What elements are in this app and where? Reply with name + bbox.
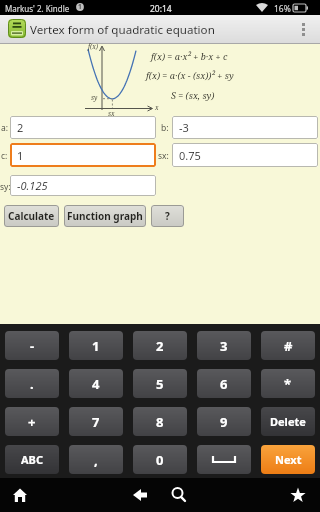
staticText: b:	[161, 122, 169, 134]
button[interactable]	[8, 483, 32, 507]
button[interactable]	[197, 445, 251, 474]
button[interactable]: Function graph	[64, 205, 146, 227]
button[interactable]	[292, 15, 320, 44]
staticText: sx	[108, 109, 115, 118]
button[interactable]: 7	[69, 407, 123, 436]
button[interactable]: 1	[69, 331, 123, 360]
button[interactable]: Next	[261, 445, 315, 474]
staticText: sx:	[158, 150, 169, 162]
staticText: 0.75	[179, 148, 201, 163]
button[interactable]: 5	[133, 369, 187, 398]
button[interactable]: ?	[151, 205, 184, 227]
staticText: -0.125	[17, 178, 48, 193]
staticText: Calculate	[8, 209, 55, 223]
button[interactable]: 8	[133, 407, 187, 436]
button[interactable]: 3	[197, 331, 251, 360]
button[interactable]: 4	[69, 369, 123, 398]
button[interactable]: ,	[69, 445, 123, 474]
staticText: #	[284, 337, 293, 355]
staticText: ABC	[21, 452, 43, 467]
button[interactable]: ABC	[5, 445, 59, 474]
button[interactable]: -3	[172, 116, 318, 139]
staticText: 6	[220, 375, 228, 393]
button[interactable]: 9	[197, 407, 251, 436]
button[interactable]: +	[5, 407, 59, 436]
button[interactable]: 1	[10, 143, 156, 167]
staticText: f(x) = a·x² + b·x + c	[151, 50, 228, 62]
staticText: 0	[156, 451, 164, 469]
staticText: Vertex form of quadratic equation	[30, 22, 215, 38]
staticText: Function graph	[67, 209, 143, 223]
staticText: 8	[156, 413, 164, 431]
staticText: sy	[91, 93, 98, 102]
staticText: ?	[165, 209, 170, 223]
button[interactable]: 0.75	[172, 143, 318, 167]
staticText: 2	[156, 337, 164, 355]
button[interactable]	[167, 483, 191, 507]
staticText: f(x)	[88, 42, 99, 51]
staticText: +	[28, 413, 36, 431]
staticText: c:	[1, 150, 8, 162]
staticText: Delete	[270, 414, 306, 429]
staticText: 1	[17, 148, 24, 163]
staticText: 16%	[274, 3, 291, 15]
button[interactable]: Calculate	[4, 205, 59, 227]
button[interactable]: *	[261, 369, 315, 398]
button[interactable]: -0.125	[10, 175, 156, 196]
staticText: 1	[92, 337, 100, 355]
staticText: .	[30, 375, 34, 393]
button[interactable]	[286, 483, 310, 507]
staticText: 7	[92, 413, 100, 431]
staticText: -3	[179, 120, 189, 135]
staticText: 3	[220, 337, 228, 355]
staticText: S = (sx, sy)	[171, 89, 215, 101]
staticText: sy:	[0, 181, 11, 193]
staticText: Markus' 2. Kindle	[5, 3, 70, 14]
button[interactable]: -	[5, 331, 59, 360]
button[interactable]: 2	[10, 116, 156, 139]
staticText: *	[284, 375, 292, 393]
button[interactable]: 2	[133, 331, 187, 360]
button[interactable]: Delete	[261, 407, 315, 436]
staticText: 20:14	[150, 3, 172, 15]
staticText: a:	[1, 122, 9, 134]
staticText: x	[155, 103, 159, 112]
staticText: 9	[220, 413, 228, 431]
button[interactable]: 0	[133, 445, 187, 474]
staticText: Next	[275, 452, 302, 467]
staticText: 4	[92, 375, 100, 393]
staticText: f(x) = a·(x − (sx))² + sy	[146, 69, 234, 81]
button[interactable]: 6	[197, 369, 251, 398]
button[interactable]: #	[261, 331, 315, 360]
staticText: 1	[78, 2, 82, 11]
button[interactable]: .	[5, 369, 59, 398]
staticText: 5	[156, 375, 164, 393]
staticText: ,	[94, 451, 98, 469]
button[interactable]	[128, 483, 152, 507]
staticText: 2	[17, 120, 24, 135]
staticText: -	[30, 337, 35, 355]
